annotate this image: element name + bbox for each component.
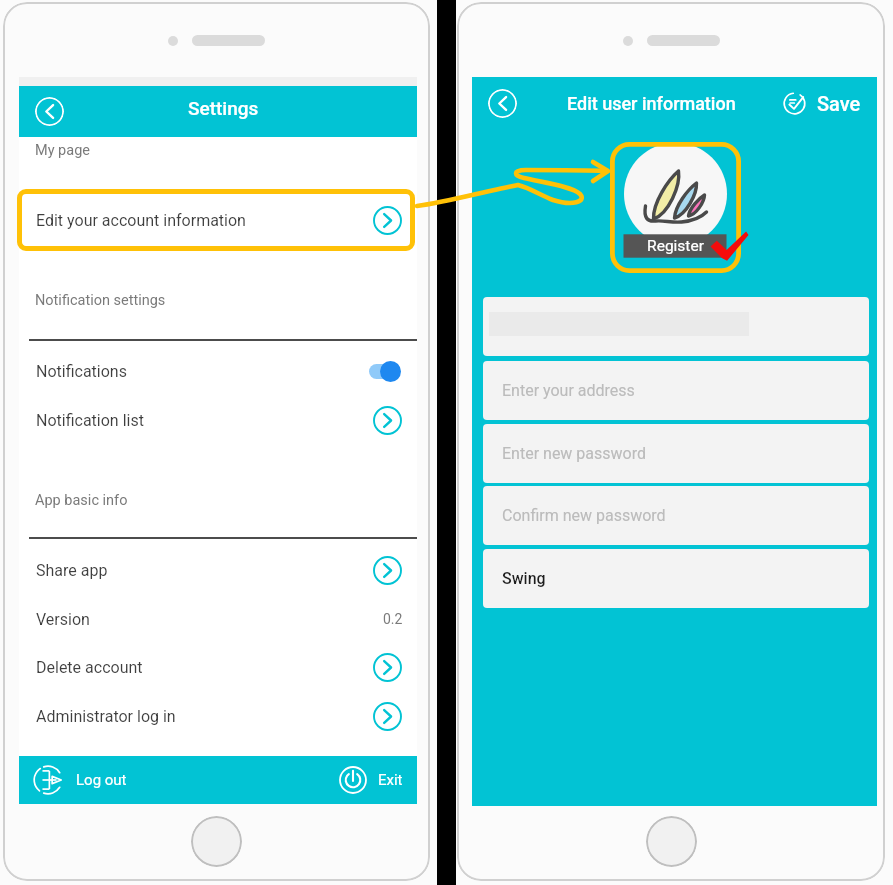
button[interactable]: Back bbox=[488, 89, 517, 118]
button[interactable]: Confirm new password bbox=[483, 486, 869, 545]
button[interactable]: Notifications bbox=[19, 347, 417, 395]
button[interactable]: Enter your address bbox=[483, 361, 869, 420]
staticText: Notification list bbox=[36, 411, 144, 430]
staticText: Log out bbox=[76, 771, 127, 789]
staticText: Enter new password bbox=[502, 444, 646, 463]
staticText: My page bbox=[35, 142, 90, 159]
button[interactable]: Enter new password bbox=[483, 424, 869, 483]
button[interactable]: Back bbox=[35, 97, 64, 126]
staticText: Settings bbox=[188, 97, 259, 119]
button[interactable]: Exit bbox=[338, 759, 417, 801]
staticText: Exit bbox=[378, 771, 403, 789]
staticText: Version bbox=[36, 610, 90, 629]
button[interactable]: Swing bbox=[483, 549, 869, 608]
button[interactable]: Register profile photo bbox=[610, 142, 741, 273]
staticText: Save bbox=[817, 92, 861, 115]
staticText: Enter your address bbox=[502, 381, 635, 400]
button[interactable]: Share app bbox=[19, 546, 417, 594]
staticText: Register bbox=[624, 237, 727, 259]
staticText: Edit your account information bbox=[36, 211, 246, 230]
button[interactable]: Administrator log in bbox=[19, 692, 417, 740]
staticText: Notifications bbox=[36, 362, 127, 381]
staticText: Edit user information bbox=[567, 93, 736, 114]
button[interactable]: Notification list bbox=[19, 396, 417, 444]
staticText: Delete account bbox=[36, 658, 143, 677]
button[interactable]: Delete account bbox=[19, 643, 417, 691]
button[interactable]: Log out bbox=[19, 759, 137, 801]
staticText: Administrator log in bbox=[36, 707, 176, 726]
staticText: Notification settings bbox=[35, 292, 166, 309]
staticText: 0.2 bbox=[383, 611, 403, 627]
staticText: Share app bbox=[36, 561, 108, 580]
staticText: Swing bbox=[502, 569, 546, 588]
staticText: App basic info bbox=[35, 492, 128, 509]
button[interactable] bbox=[483, 297, 869, 356]
button[interactable]: Save bbox=[783, 86, 877, 121]
button[interactable]: Version bbox=[19, 595, 417, 643]
staticText: Confirm new password bbox=[502, 506, 666, 525]
button[interactable]: Edit your account information bbox=[19, 189, 417, 251]
